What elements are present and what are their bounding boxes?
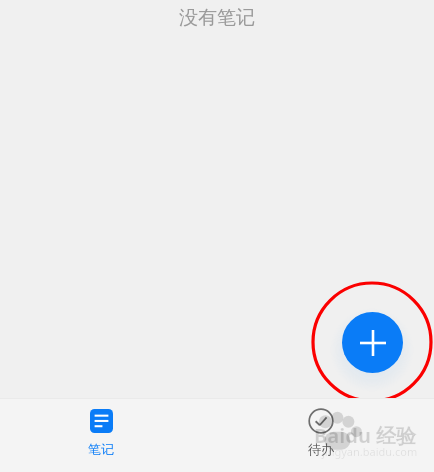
button[interactable]: 新建笔记 bbox=[342, 312, 403, 373]
staticText: jingyan.baidu.com bbox=[322, 444, 418, 459]
staticText: 没有笔记 bbox=[179, 6, 255, 30]
button[interactable]: 待办 bbox=[217, 399, 434, 472]
staticText: 待办 bbox=[308, 441, 334, 457]
button[interactable]: 笔记 bbox=[0, 399, 217, 472]
staticText: 笔记 bbox=[88, 441, 114, 457]
staticText: Baidu 经验 bbox=[314, 422, 417, 449]
